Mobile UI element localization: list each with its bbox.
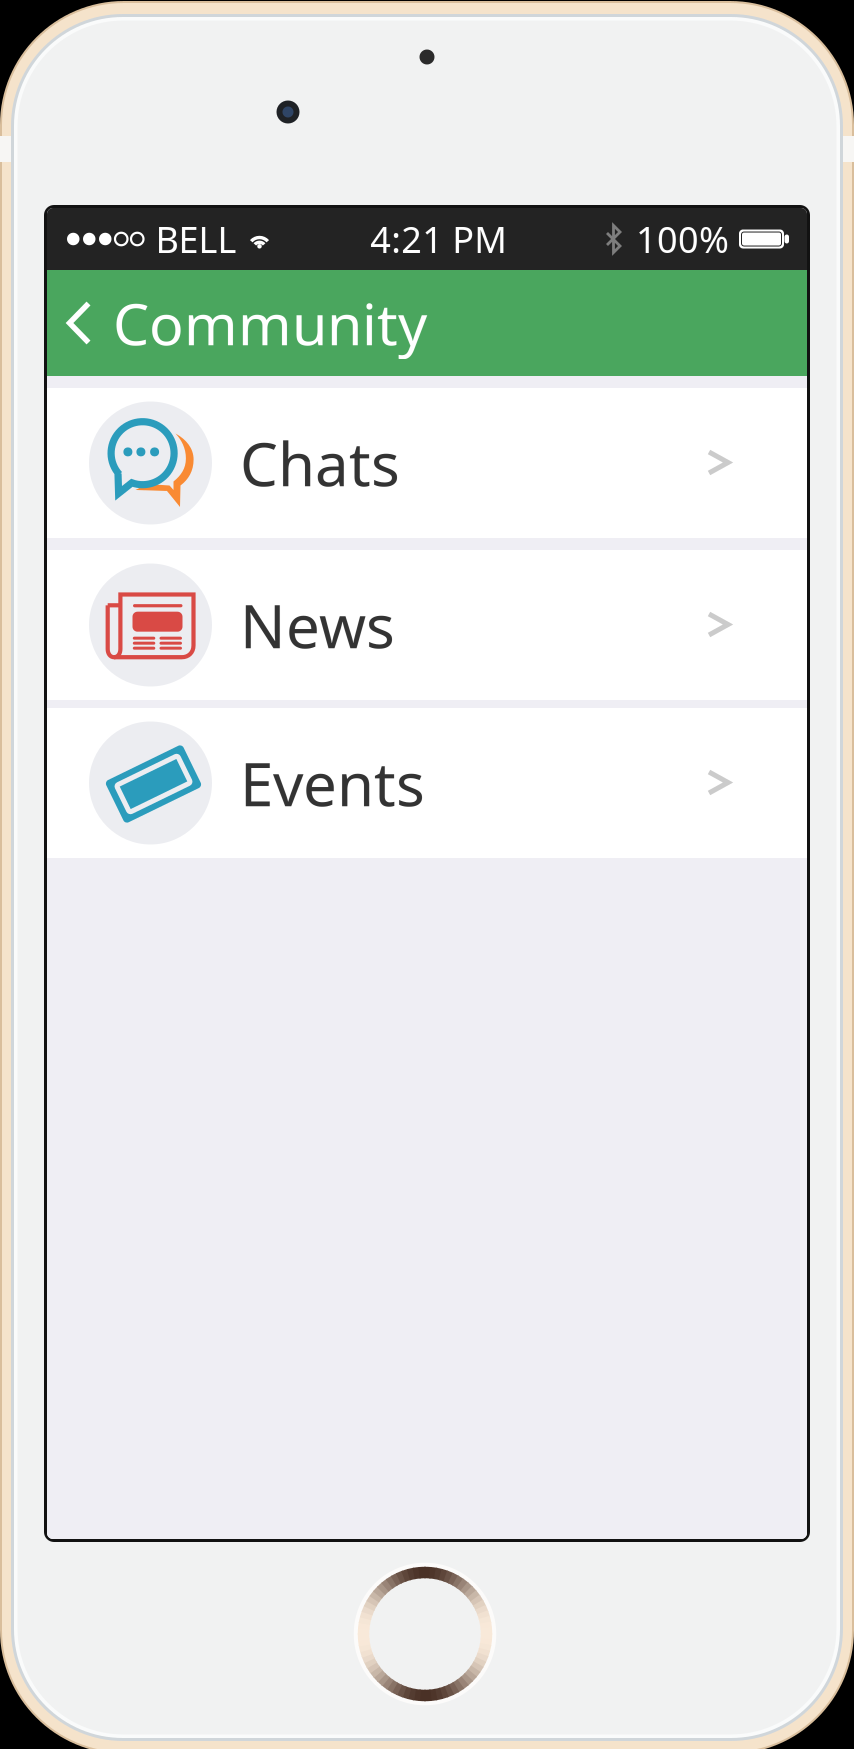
staticText: Community: [113, 285, 427, 361]
staticText: Chats: [240, 423, 400, 503]
button[interactable]: Community: [47, 270, 455, 376]
staticText: 100%: [636, 215, 729, 263]
button[interactable]: News: [47, 550, 807, 700]
button[interactable]: Events: [47, 708, 807, 858]
button[interactable]: Chats: [47, 388, 807, 538]
staticText: BELL: [155, 215, 236, 263]
staticText: Events: [240, 743, 425, 823]
staticText: News: [240, 585, 395, 665]
staticText: 4:21 PM: [370, 215, 507, 263]
